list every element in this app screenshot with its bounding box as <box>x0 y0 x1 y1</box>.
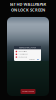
staticText: Tap Wallpaper <box>18 53 28 55</box>
staticText: Open Settings <box>18 51 27 52</box>
button[interactable]: CANCEL <box>28 58 36 60</box>
staticText: Pick the photo <box>18 56 27 58</box>
button[interactable]: SET WALLPAPER <box>20 89 35 94</box>
staticText: OK <box>37 58 39 60</box>
staticText: SET HD WALLPAPER <box>9 1 46 7</box>
staticText: CANCEL <box>29 58 35 60</box>
staticText: SET WALLPAPER <box>22 91 34 92</box>
button[interactable]: OK <box>36 58 40 60</box>
staticText: HOW TO SET WALLPAPER <box>19 47 36 48</box>
staticText: ON LOCK SCREEN <box>11 7 45 13</box>
